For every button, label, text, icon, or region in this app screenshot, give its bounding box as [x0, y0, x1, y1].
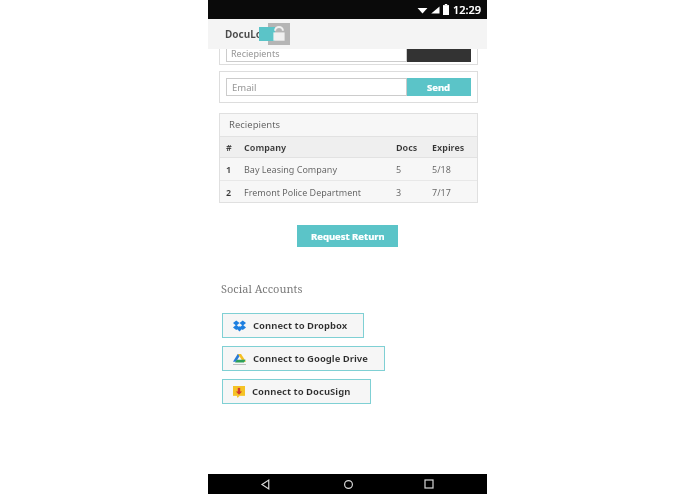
staticText: Send	[427, 81, 451, 94]
button[interactable]: Back	[258, 476, 274, 492]
button[interactable]: Connect to Dropbox	[222, 313, 364, 338]
staticText: 2	[226, 186, 232, 198]
button[interactable]	[407, 44, 471, 62]
staticText: 7/17	[432, 186, 451, 198]
staticText: 1	[226, 163, 232, 175]
button[interactable]: 2	[219, 181, 478, 203]
button[interactable]: Send	[407, 78, 471, 96]
staticText: 12:29	[453, 2, 482, 17]
staticText: Email	[232, 81, 257, 94]
staticText: 5/18	[432, 163, 451, 175]
staticText: Reciepients	[229, 118, 281, 131]
button[interactable]: Home	[340, 476, 356, 492]
staticText: Connect to Google Drive	[253, 352, 368, 365]
staticText: Reciepients	[231, 47, 280, 59]
staticText: Expires	[432, 141, 465, 153]
staticText: Connect to DocuSign	[252, 385, 351, 398]
button[interactable]: 1	[219, 158, 478, 180]
button[interactable]: DocuLock	[225, 27, 274, 41]
staticText: Connect to Dropbox	[253, 319, 348, 332]
button[interactable]: Recent apps	[421, 476, 437, 492]
button[interactable]: Connect to Google Drive	[222, 346, 385, 371]
button[interactable]: Request Return	[297, 225, 398, 247]
staticText: Docs	[396, 141, 418, 153]
staticText: Bay Leasing Company	[244, 163, 338, 175]
staticText: #	[226, 141, 232, 153]
staticText: Social Accounts	[221, 281, 303, 296]
staticText: Company	[244, 141, 287, 153]
staticText: Fremont Police Department	[244, 186, 362, 198]
staticText: 5	[396, 163, 402, 175]
staticText: DocuLock	[225, 27, 274, 41]
staticText: 3	[396, 186, 402, 198]
button[interactable]: Connect to DocuSign	[222, 379, 371, 404]
staticText: Request Return	[311, 230, 385, 243]
